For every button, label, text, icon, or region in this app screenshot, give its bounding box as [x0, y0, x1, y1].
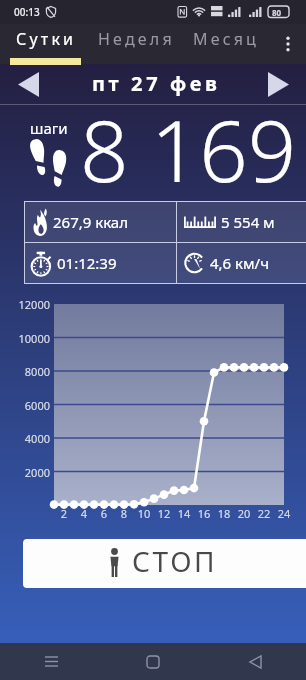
- staticText: Месяц: [193, 28, 260, 50]
- staticText: 267,9 ккал: [53, 212, 129, 232]
- staticText: 4000: [0, 431, 50, 446]
- staticText: пт 27 фев: [92, 70, 221, 97]
- button[interactable]: СТОП: [23, 539, 306, 588]
- staticText: 8 169: [80, 91, 297, 183]
- staticText: 2: [54, 506, 74, 521]
- button[interactable]: 267,9 ккал: [24, 201, 176, 242]
- staticText: Неделя: [98, 28, 175, 50]
- staticText: 00:13: [14, 5, 40, 19]
- staticText: 8: [114, 506, 134, 521]
- button[interactable]: 5 554 м: [177, 201, 306, 242]
- staticText: 10000: [0, 331, 50, 346]
- staticText: 16: [194, 506, 214, 521]
- button[interactable]: 01:12:39: [24, 243, 176, 283]
- staticText: Сутки: [16, 28, 77, 50]
- staticText: 14: [174, 506, 194, 521]
- staticText: 20: [234, 506, 254, 521]
- staticText: 2000: [0, 465, 50, 480]
- staticText: шаги: [30, 118, 68, 138]
- staticText: 18: [214, 506, 234, 521]
- staticText: 01:12:39: [57, 253, 117, 273]
- staticText: 5 554 м: [221, 212, 275, 232]
- staticText: 12000: [0, 297, 50, 312]
- button[interactable]: Месяц: [180, 24, 270, 64]
- staticText: 6000: [0, 398, 50, 413]
- button[interactable]: 4,6 км/ч: [177, 243, 306, 283]
- button[interactable]: Home: [102, 643, 204, 680]
- staticText: 6: [94, 506, 114, 521]
- staticText: 12: [154, 506, 174, 521]
- button[interactable]: Next day: [250, 64, 306, 105]
- button[interactable]: Recents: [0, 643, 102, 680]
- staticText: 4,6 км/ч: [210, 253, 269, 273]
- button[interactable]: Back: [204, 643, 306, 680]
- button[interactable]: Неделя: [91, 24, 180, 64]
- staticText: 10: [134, 506, 154, 521]
- button[interactable]: Сутки: [0, 24, 91, 64]
- staticText: 8000: [0, 364, 50, 379]
- button[interactable]: Previous day: [0, 64, 56, 105]
- staticText: 4: [74, 506, 94, 521]
- button[interactable]: More options: [270, 24, 306, 64]
- staticText: СТОП: [132, 542, 218, 580]
- staticText: 80: [272, 7, 282, 18]
- staticText: 22: [254, 506, 274, 521]
- staticText: 24: [274, 506, 294, 521]
